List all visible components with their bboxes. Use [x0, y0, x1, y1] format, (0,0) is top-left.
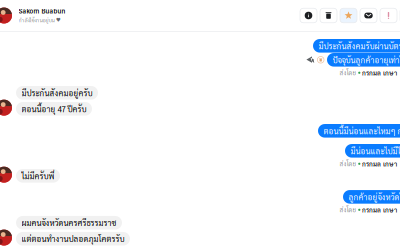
staticText: ส่งโดย	[340, 206, 357, 214]
button[interactable]: Mark as unread	[358, 8, 378, 23]
button[interactable]: Conversation info	[298, 8, 318, 23]
staticText: ผมคนจังหวัดนครศรีธรรมราช	[21, 218, 116, 228]
staticText: ♥	[56, 17, 61, 23]
staticText: แต่ตอนทำงานปลอดภุมโคตรรับ	[21, 234, 124, 244]
staticText: กำลังใช้งานอยู่บน	[18, 17, 54, 23]
staticText: Sakorn Buabun	[18, 8, 65, 15]
staticText: ลูกค้าอยู่จังหวัดไหนคะบ้าง	[348, 192, 400, 202]
staticText: กรกมล เกษา	[362, 206, 397, 214]
staticText: กรกมล เกษา	[362, 160, 397, 168]
button[interactable]: More options	[398, 8, 400, 23]
button[interactable]: Delete conversation	[318, 8, 338, 23]
staticText: ไม่มีครับพี่	[21, 171, 54, 181]
staticText: มีประกันสังคมรับผ่านบัตรประชาชน	[318, 41, 400, 51]
button[interactable]: Sakorn Buabun	[0, 7, 65, 23]
staticText: กรกมล เกษา	[362, 69, 397, 77]
staticText: ปัจจุบันลูกค้าอายุเท่าไหร่แล้วคะ	[332, 55, 400, 65]
staticText: ส่งโดย	[340, 160, 357, 168]
staticText: ตอนนี้มีน่อนและไหมๆ ก่อนไหนคะ	[323, 126, 400, 136]
staticText: ตอนนี้อายุ 47 ปีครับ	[21, 104, 86, 114]
staticText: มีน่อนและไปมีไหนคะอยู่ๆ	[350, 146, 400, 156]
button[interactable]: Mark as followed up	[338, 8, 358, 23]
staticText: ส่งโดย	[340, 69, 357, 77]
button[interactable]: Report	[378, 8, 398, 23]
staticText: มีประกันสังคมอยู่ครับ	[21, 88, 92, 98]
